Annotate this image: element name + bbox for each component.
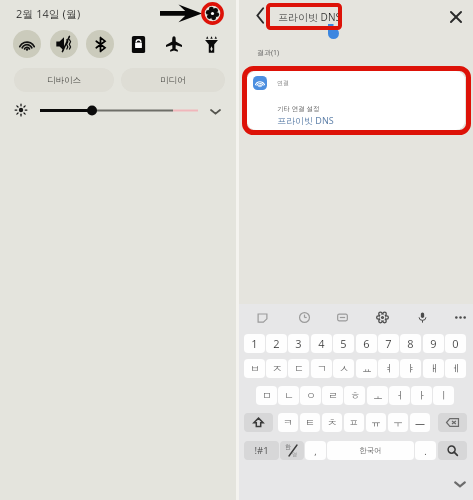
staticText: 7 xyxy=(385,336,392,351)
staticText: ㅜ xyxy=(393,416,403,429)
button[interactable]: ㅈ xyxy=(266,359,287,378)
staticText: ㅇ xyxy=(306,389,316,402)
button[interactable]: 디바이스 xyxy=(14,68,114,92)
button[interactable]: Backspace xyxy=(438,413,467,432)
button[interactable]: ㅗ xyxy=(367,386,388,405)
staticText: 1 xyxy=(251,336,258,351)
staticText: ㅎ xyxy=(350,389,360,402)
button[interactable]: ㄱ xyxy=(311,359,332,378)
button[interactable]: Wi-Fi xyxy=(13,30,41,58)
staticText: ㅏ xyxy=(417,389,427,402)
staticText: ㅛ xyxy=(362,362,372,375)
button[interactable]: Keyboard settings xyxy=(374,309,391,326)
button[interactable]: — xyxy=(410,413,430,432)
button[interactable]: 8 xyxy=(400,334,421,353)
button[interactable]: Hide keyboard xyxy=(452,476,468,492)
button[interactable]: ㅔ xyxy=(445,359,466,378)
button[interactable]: ㅇ xyxy=(300,386,321,405)
staticText: ㅕ xyxy=(384,362,394,375)
button[interactable]: ㅍ xyxy=(344,413,364,432)
button[interactable]: ㅁ xyxy=(256,386,277,405)
button[interactable]: ㅓ xyxy=(389,386,410,405)
button[interactable]: ㅜ xyxy=(388,413,408,432)
staticText: 기타 연결 설정 xyxy=(277,104,320,113)
staticText: ㄴ xyxy=(284,389,294,402)
staticText: 0 xyxy=(452,336,459,351)
staticText: 미디어 xyxy=(160,75,186,86)
button[interactable]: GIF xyxy=(296,309,313,326)
button[interactable]: Translate xyxy=(334,309,351,326)
button[interactable]: Symbols xyxy=(244,441,279,460)
button[interactable]: 연결 xyxy=(247,71,465,130)
staticText: 연결 xyxy=(277,79,289,87)
staticText: ㅣ xyxy=(439,389,449,402)
staticText: ㅍ xyxy=(349,416,359,429)
button[interactable]: Space xyxy=(327,441,414,460)
staticText: ㅂ xyxy=(250,362,260,375)
button[interactable]: 0 xyxy=(445,334,466,353)
button[interactable]: ㅋ xyxy=(278,413,298,432)
button[interactable]: ㄹ xyxy=(322,386,343,405)
staticText: ㄱ xyxy=(317,362,327,375)
button[interactable]: Close search xyxy=(447,8,465,26)
button[interactable]: ㅎ xyxy=(344,386,365,405)
button[interactable]: Voice input xyxy=(414,309,431,326)
staticText: 5 xyxy=(340,336,347,351)
button[interactable]: ㄷ xyxy=(288,359,309,378)
button[interactable]: Expand brightness xyxy=(208,104,223,119)
button[interactable]: Korean / English xyxy=(280,441,304,460)
button[interactable]: 7 xyxy=(378,334,399,353)
staticText: ㅅ xyxy=(339,362,349,375)
button[interactable]: ㅊ xyxy=(322,413,342,432)
staticText: !#1 xyxy=(254,444,269,457)
button[interactable]: 9 xyxy=(423,334,444,353)
button[interactable]: . xyxy=(415,441,436,460)
button[interactable]: ㄴ xyxy=(278,386,299,405)
button[interactable]: More options xyxy=(452,309,469,326)
staticText: ㅗ xyxy=(373,389,383,402)
button[interactable]: Back xyxy=(252,6,270,25)
staticText: — xyxy=(415,416,425,430)
button[interactable]: 5 xyxy=(333,334,354,353)
button[interactable]: 프라이빗 DNS xyxy=(278,10,341,24)
button[interactable]: 1 xyxy=(244,334,265,353)
button[interactable]: Flashlight xyxy=(197,30,225,58)
staticText: , xyxy=(314,445,317,457)
button[interactable]: Stickers xyxy=(254,309,271,326)
button[interactable]: 3 xyxy=(288,334,309,353)
staticText: 9 xyxy=(430,336,437,351)
staticText: ㅊ xyxy=(327,416,337,429)
staticText: 결과(1) xyxy=(257,48,280,58)
staticText: ㅠ xyxy=(371,416,381,429)
button[interactable]: , xyxy=(305,441,326,460)
button[interactable]: 미디어 xyxy=(121,68,225,92)
staticText: 6 xyxy=(363,336,370,351)
button[interactable]: 6 xyxy=(356,334,377,353)
button[interactable]: ㅌ xyxy=(300,413,320,432)
staticText: 2월 14일 (월) xyxy=(16,6,81,21)
button[interactable]: Search xyxy=(438,441,467,460)
button[interactable]: ㅣ xyxy=(433,386,454,405)
staticText: ㅓ xyxy=(395,389,405,402)
button[interactable]: Sound off xyxy=(50,30,78,58)
staticText: 2 xyxy=(273,336,280,351)
button[interactable]: Screen lock xyxy=(124,30,152,58)
button[interactable]: ㅑ xyxy=(400,359,421,378)
button[interactable]: ㅛ xyxy=(356,359,377,378)
button[interactable]: Shift xyxy=(244,413,273,432)
button[interactable]: ㅐ xyxy=(423,359,444,378)
button[interactable]: 2 xyxy=(266,334,287,353)
staticText: ㄹ xyxy=(328,389,338,402)
button[interactable]: 4 xyxy=(311,334,332,353)
staticText: ㅈ xyxy=(272,362,282,375)
button[interactable]: Airplane mode xyxy=(160,30,188,58)
staticText: ㅌ xyxy=(305,416,315,429)
button[interactable]: ㅠ xyxy=(366,413,386,432)
button[interactable]: ㅏ xyxy=(411,386,432,405)
button[interactable]: ㅅ xyxy=(333,359,354,378)
button[interactable]: ㅂ xyxy=(244,359,265,378)
button[interactable]: Settings xyxy=(201,2,224,25)
staticText: ㅔ xyxy=(451,362,461,375)
button[interactable]: ㅕ xyxy=(378,359,399,378)
button[interactable]: Bluetooth xyxy=(86,30,114,58)
